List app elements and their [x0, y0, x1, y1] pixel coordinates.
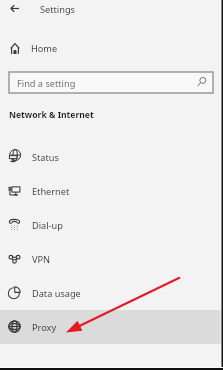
staticText: Find a setting: [17, 77, 76, 90]
button[interactable]: Back: [6, 0, 24, 18]
staticText: Ethernet: [32, 185, 70, 198]
button[interactable]: Data usage: [0, 276, 223, 310]
staticText: Settings: [40, 3, 75, 16]
staticText: Dial-up: [32, 219, 63, 232]
button[interactable]: Find a setting: [9, 72, 213, 93]
staticText: Home: [31, 42, 58, 55]
button[interactable]: Home: [0, 36, 223, 62]
staticText: Network & Internet: [9, 109, 94, 121]
button[interactable]: Proxy: [0, 310, 223, 344]
button[interactable]: Status: [0, 140, 223, 174]
button[interactable]: Dial-up: [0, 208, 223, 242]
staticText: Proxy: [32, 321, 57, 334]
staticText: Data usage: [32, 287, 81, 300]
button[interactable]: Ethernet: [0, 174, 223, 208]
staticText: Status: [32, 151, 59, 164]
staticText: VPN: [32, 253, 51, 266]
button[interactable]: VPN: [0, 242, 223, 276]
